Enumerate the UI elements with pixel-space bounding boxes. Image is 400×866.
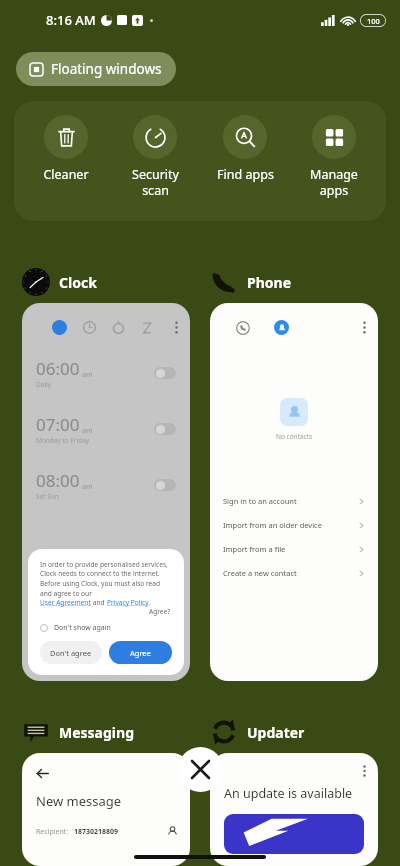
staticText: No contacts	[276, 432, 313, 441]
staticText: . Agree?	[149, 598, 172, 616]
button[interactable]: Alarm toggle	[154, 479, 176, 491]
button[interactable]: Alarm toggle	[154, 423, 176, 435]
staticText: Import from an older device	[223, 520, 322, 530]
button[interactable]: New message	[22, 753, 190, 866]
button[interactable]: An update is available	[210, 753, 378, 866]
button[interactable]: Manage apps	[296, 115, 372, 198]
button[interactable]: 06:00	[22, 303, 190, 681]
button[interactable]: Don't agree	[40, 641, 102, 664]
staticText: 08:00	[36, 469, 80, 492]
staticText: Sign in to an account	[223, 496, 297, 506]
button[interactable]: Don't show again	[40, 623, 111, 633]
button[interactable]: Close all	[178, 747, 223, 792]
staticText: Recipient:	[36, 827, 69, 837]
button[interactable]: Find apps	[207, 115, 283, 183]
staticText: Phone	[247, 273, 292, 292]
staticText: Agree	[130, 648, 151, 658]
staticText: Messaging	[59, 723, 134, 742]
staticText: An update is available	[224, 785, 353, 802]
button[interactable]: Create a new contact	[210, 561, 378, 585]
staticText: User Agreement	[40, 598, 91, 607]
button[interactable]: Alarm toggle	[154, 367, 176, 379]
staticText: Find apps	[217, 166, 274, 183]
staticText: Daily	[36, 380, 52, 389]
staticText: am	[82, 482, 93, 492]
button[interactable]: Import from an older device	[210, 513, 378, 537]
staticText: Privacy Policy	[107, 598, 149, 607]
staticText: Floating windows	[51, 60, 162, 78]
button[interactable]: No contacts	[210, 303, 378, 681]
staticText: Security scan	[132, 166, 179, 198]
button[interactable]: Cleaner	[28, 115, 104, 183]
staticText: Import from a file	[223, 544, 286, 554]
button[interactable]: Floating windows	[16, 52, 176, 86]
staticText: Cleaner	[43, 166, 89, 183]
staticText: Updater	[247, 723, 305, 742]
staticText: 07:00	[36, 413, 80, 436]
staticText: In order to provide personalised service…	[40, 560, 172, 598]
button[interactable]: Security scan	[117, 115, 193, 198]
staticText: Manage apps	[310, 166, 358, 198]
staticText: 8:16 AM	[46, 11, 96, 29]
staticText: Don't show again	[54, 623, 111, 633]
staticText: 100	[367, 16, 380, 26]
staticText: Monday to Friday	[36, 436, 90, 445]
button[interactable]: Agree	[109, 641, 172, 664]
staticText: Clock	[59, 273, 97, 292]
staticText: am	[82, 370, 93, 380]
staticText: Sat Sun	[36, 492, 59, 501]
staticText: Don't agree	[50, 648, 92, 658]
staticText: Create a new contact	[223, 568, 297, 578]
staticText: 18730218809	[74, 827, 119, 837]
button[interactable]: Sign in to an account	[210, 489, 378, 513]
staticText: am	[82, 426, 93, 436]
staticText: 06:00	[36, 357, 80, 380]
button[interactable]: Import from a file	[210, 537, 378, 561]
staticText: New message	[36, 792, 122, 810]
staticText: and	[91, 598, 107, 607]
